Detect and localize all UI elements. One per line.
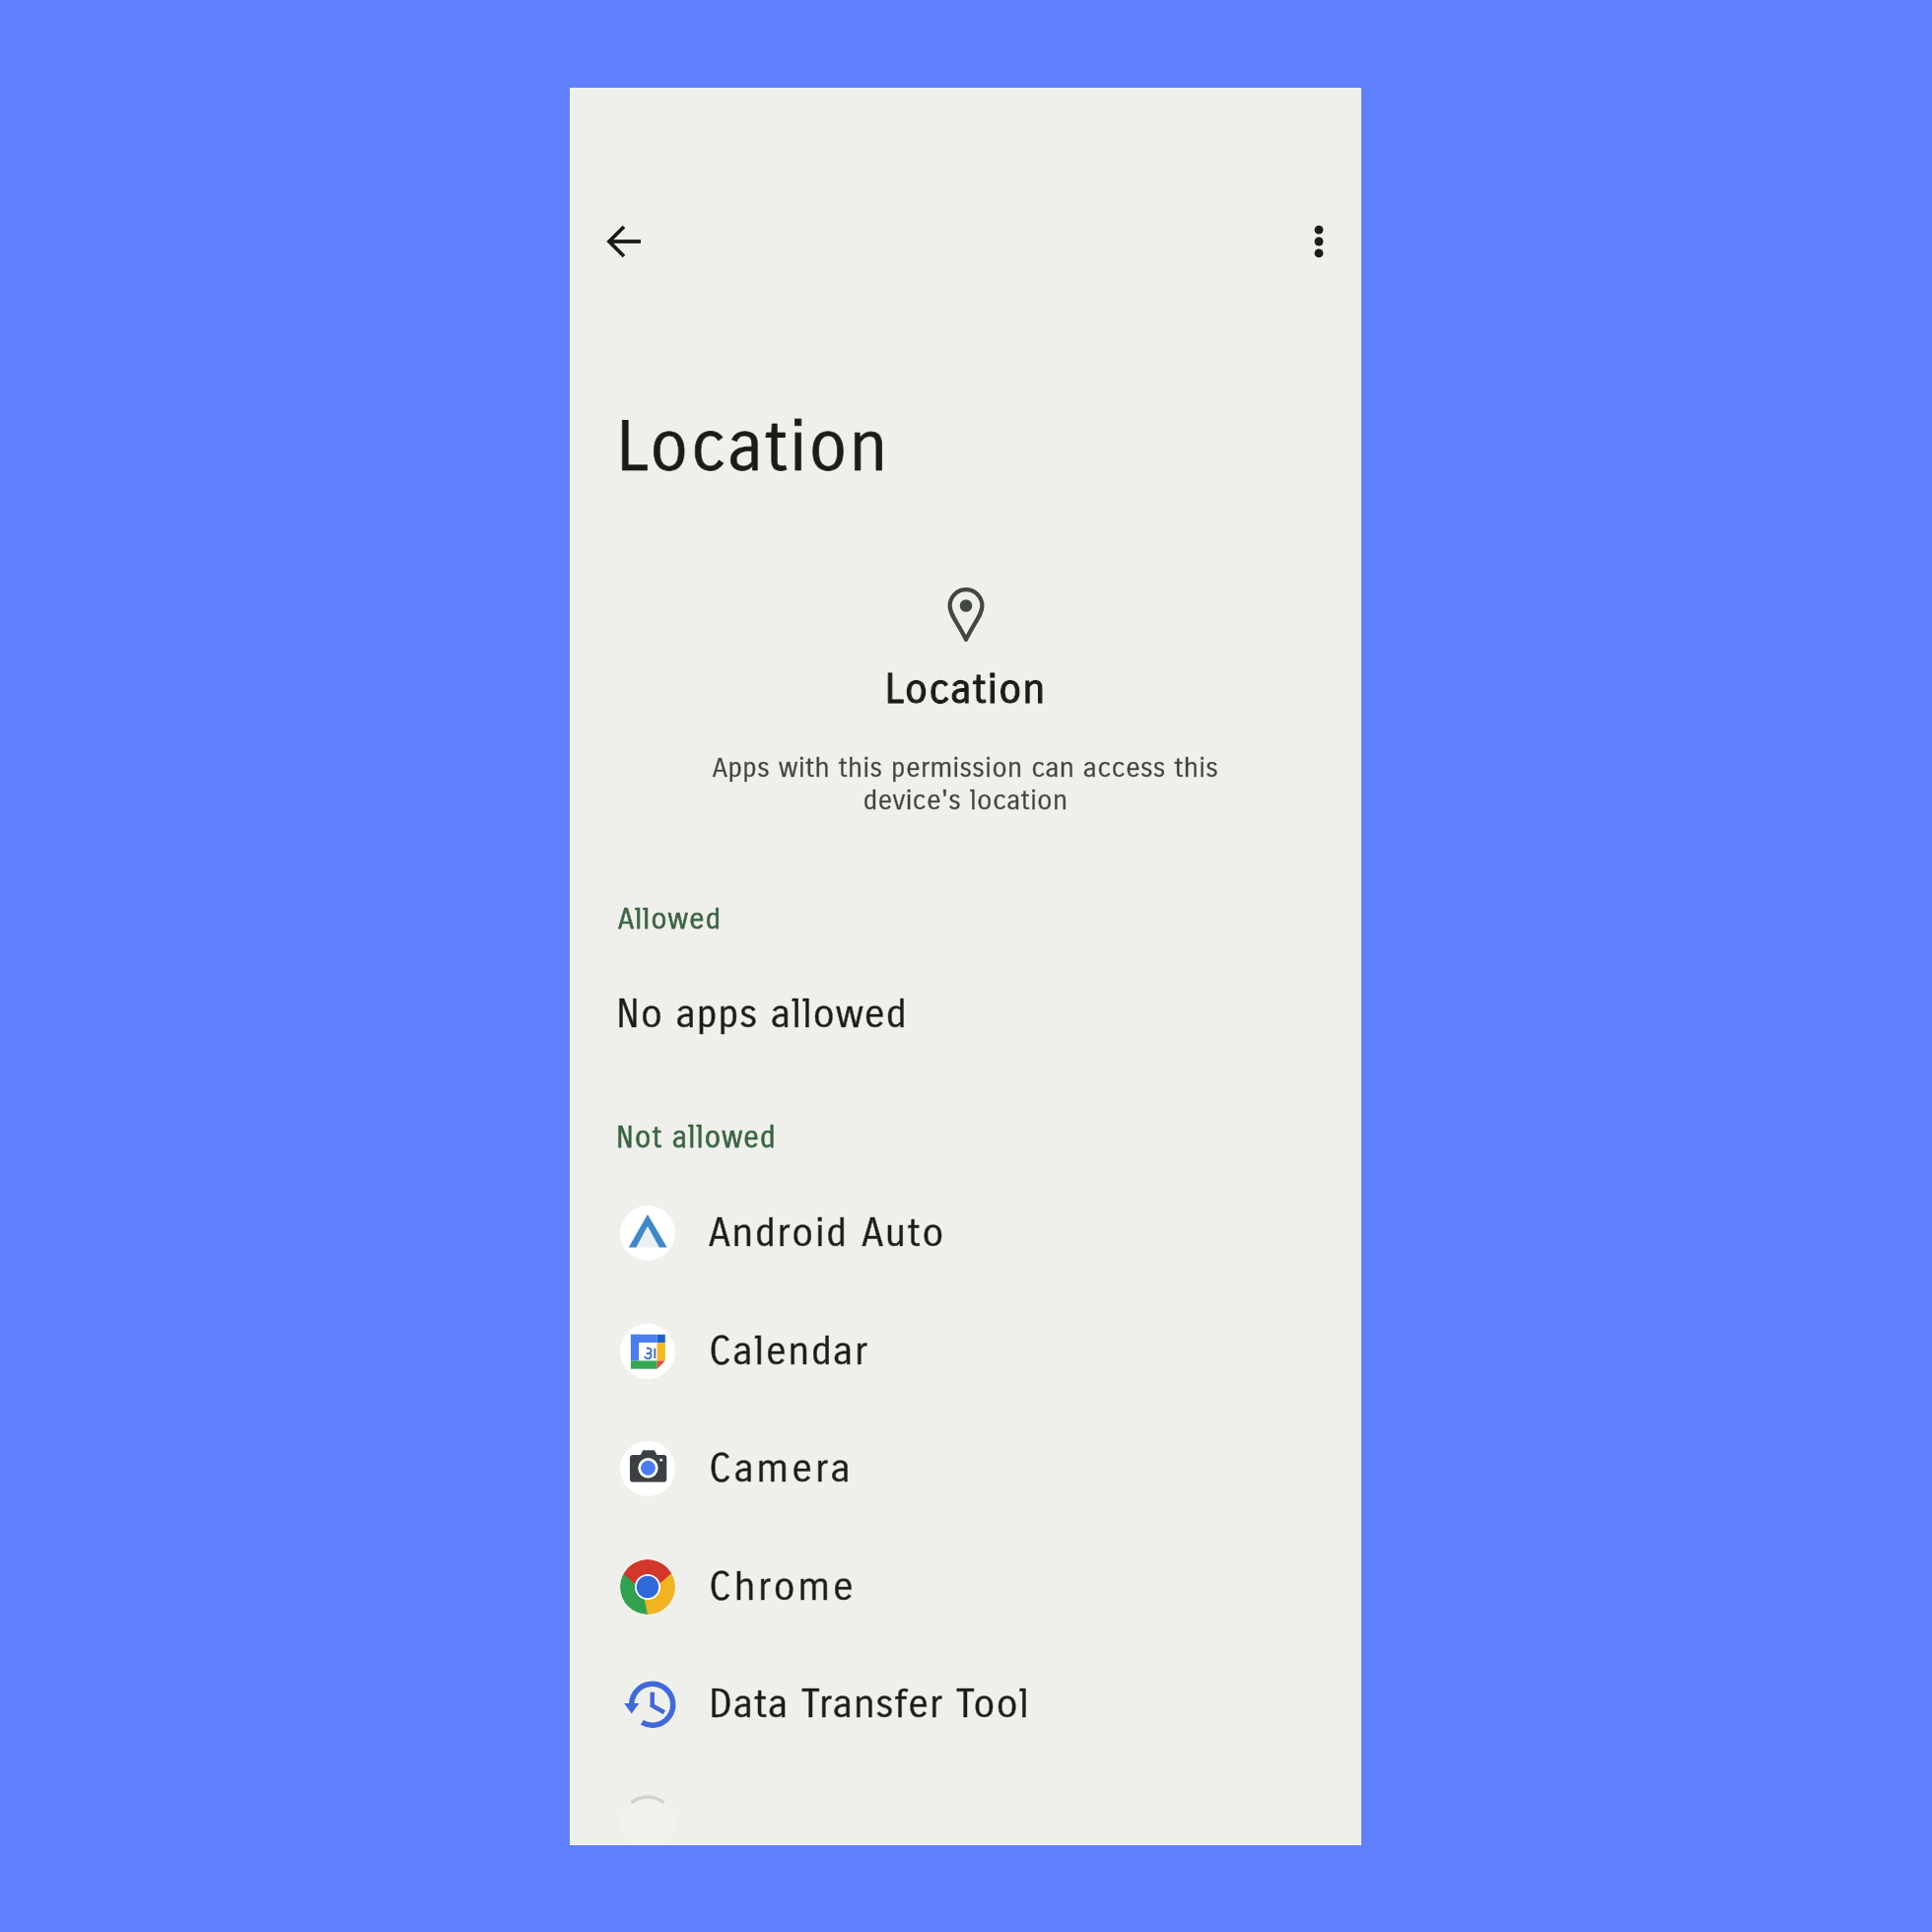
staticText: Location xyxy=(570,665,1361,714)
staticText: Chrome xyxy=(709,1564,857,1611)
button[interactable]: Camera xyxy=(570,1410,1361,1527)
staticText: Chrome xyxy=(709,1564,857,1611)
staticText: Calendar xyxy=(709,1329,869,1375)
button[interactable]: More options xyxy=(1283,206,1354,277)
button[interactable]: Android Auto xyxy=(570,1174,1361,1291)
staticText: Apps with this permission can access thi… xyxy=(678,752,1253,817)
staticText: Calendar xyxy=(709,1329,869,1375)
staticText: Allowed xyxy=(618,902,722,936)
staticText: Not allowed xyxy=(616,1121,777,1156)
staticText: Data Transfer Tool xyxy=(709,1682,1030,1728)
staticText: Camera xyxy=(709,1446,854,1492)
staticText: Apps with this permission can access thi… xyxy=(678,752,1253,817)
staticText: No apps allowed xyxy=(616,991,908,1037)
button[interactable]: Back xyxy=(589,206,660,277)
staticText: No apps allowed xyxy=(616,991,908,1037)
staticText: Camera xyxy=(709,1446,854,1492)
staticText: Allowed xyxy=(618,902,722,936)
staticText: Location xyxy=(616,406,890,488)
button[interactable]: Chrome xyxy=(570,1528,1361,1645)
staticText: Location xyxy=(570,665,1361,714)
button[interactable]: Data Transfer Tool xyxy=(570,1645,1361,1762)
staticText: Data Transfer Tool xyxy=(709,1682,1030,1728)
button[interactable]: Calendar xyxy=(570,1292,1361,1410)
staticText: Android Auto xyxy=(709,1210,946,1257)
staticText: Location xyxy=(616,406,890,488)
staticText: Not allowed xyxy=(616,1121,777,1156)
staticText: Android Auto xyxy=(709,1210,946,1257)
